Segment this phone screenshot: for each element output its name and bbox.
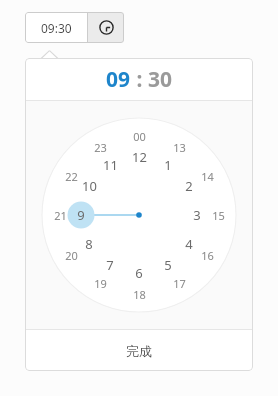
button[interactable]: 3 [184,202,210,228]
staticText: 完成 [126,343,152,359]
staticText: 18 [133,287,146,302]
staticText: 22 [65,169,78,184]
button[interactable]: 5 [155,252,181,278]
staticText: 09:30 [41,20,72,36]
button[interactable]: 完成 [25,330,253,371]
button[interactable]: 10 [76,173,102,199]
staticText: : [131,65,148,94]
button[interactable]: 22 [58,163,84,189]
button[interactable]: 8 [76,231,102,257]
button[interactable]: Open time picker [88,12,124,43]
staticText: 11 [103,156,118,174]
button[interactable]: 09:30 [25,12,87,43]
button[interactable]: 1 [155,152,181,178]
button[interactable]: 9 [68,202,94,228]
button[interactable]: 09 [106,65,131,94]
button[interactable]: 17 [166,270,192,296]
button[interactable]: 12 [126,144,152,170]
button[interactable]: 19 [87,270,113,296]
button[interactable]: 13 [166,134,192,160]
staticText: 15 [212,208,225,223]
button[interactable]: 30 [148,65,173,94]
button[interactable]: 6 [126,260,152,286]
staticText: 9 [77,206,85,224]
staticText: 2 [185,177,193,195]
button[interactable]: 2 [176,173,202,199]
button[interactable]: 16 [194,242,220,268]
staticText: 4 [185,235,193,253]
staticText: 30 [148,65,173,94]
button[interactable]: 7 [97,252,123,278]
button[interactable]: 15 [205,202,231,228]
staticText: 13 [173,140,186,155]
staticText: 5 [164,256,172,274]
staticText: 12 [132,148,147,166]
button[interactable]: 23 [87,134,113,160]
button[interactable]: 4 [176,231,202,257]
staticText: 17 [173,276,186,291]
button[interactable]: 20 [58,242,84,268]
button[interactable]: 21 [47,202,73,228]
staticText: 7 [106,256,114,274]
staticText: 14 [201,169,214,184]
staticText: 1 [164,156,172,174]
staticText: 21 [54,208,67,223]
button[interactable]: 00 [126,123,152,149]
button[interactable]: 18 [126,281,152,307]
staticText: 09 [106,65,131,94]
staticText: 3 [193,206,201,224]
staticText: 10 [82,177,97,195]
staticText: 19 [94,276,107,291]
staticText: 00 [133,129,146,144]
staticText: 6 [135,264,143,282]
button[interactable]: 11 [97,152,123,178]
button[interactable]: 14 [194,163,220,189]
staticText: 8 [85,235,93,253]
staticText: 23 [94,140,107,155]
staticText: 16 [201,248,214,263]
staticText: 20 [65,248,78,263]
